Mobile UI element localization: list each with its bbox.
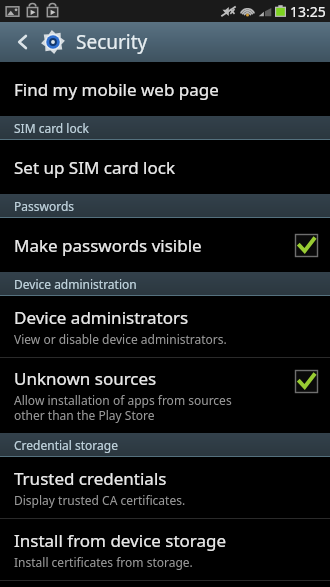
staticText: Trusted credentials — [14, 467, 167, 490]
button[interactable]: Set up SIM card lock — [0, 140, 330, 194]
staticText: Allow installation of apps from sources … — [14, 392, 232, 423]
staticText: SIM card lock — [14, 120, 89, 136]
staticText: Set up SIM card lock — [14, 156, 175, 179]
button[interactable]: Find my mobile web page — [0, 62, 330, 116]
button[interactable]: Install from device storage — [0, 519, 330, 580]
button[interactable]: Back — [6, 25, 40, 59]
staticText: View or disable device administrators. — [14, 331, 227, 347]
button[interactable]: Unknown sources checkbox — [295, 370, 318, 393]
staticText: Display trusted CA certificates. — [14, 492, 186, 508]
staticText: Unknown sources — [14, 367, 157, 390]
button[interactable]: Make passwords visible checkbox — [295, 234, 318, 257]
staticText: Find my mobile web page — [14, 78, 219, 101]
staticText: Make passwords visible — [14, 234, 202, 257]
staticText: 13:25 — [290, 2, 326, 21]
staticText: Install certificates from storage. — [14, 554, 193, 570]
staticText: Install from device storage — [14, 529, 227, 552]
button[interactable]: Device administrators — [0, 296, 330, 357]
button[interactable]: Make passwords visible — [0, 218, 330, 272]
staticText: Device administration — [14, 276, 137, 292]
button[interactable]: Unknown sources — [0, 358, 330, 433]
staticText: Credential storage — [14, 437, 118, 453]
staticText: Security — [76, 29, 148, 55]
staticText: Passwords — [14, 198, 75, 214]
staticText: Device administrators — [14, 306, 189, 329]
button[interactable]: Trusted credentials — [0, 457, 330, 518]
